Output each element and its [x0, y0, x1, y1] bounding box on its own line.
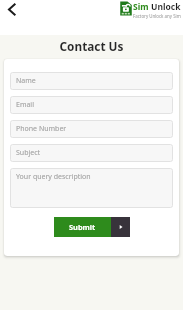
- button[interactable]: Phone Number: [10, 120, 173, 138]
- staticText: Submit: [69, 222, 96, 232]
- button[interactable]: Back: [1, 0, 23, 19]
- staticText: Email: [16, 100, 34, 110]
- staticText: Contact Us: [0, 38, 183, 54]
- button[interactable]: Your query description: [10, 168, 173, 208]
- button[interactable]: Subject: [10, 144, 173, 162]
- staticText: Subject: [16, 148, 41, 158]
- staticText: Sim: [133, 1, 151, 13]
- staticText: Factory Unlock any Sim: [133, 13, 181, 19]
- staticText: Your query description: [16, 172, 91, 182]
- button[interactable]: Sim Unlock: [120, 1, 181, 19]
- staticText: Name: [16, 76, 36, 86]
- button[interactable]: Submit: [54, 217, 130, 237]
- button[interactable]: Email: [10, 96, 173, 114]
- staticText: Unlock: [151, 1, 181, 13]
- button[interactable]: Name: [10, 72, 173, 90]
- staticText: Phone Number: [16, 124, 67, 134]
